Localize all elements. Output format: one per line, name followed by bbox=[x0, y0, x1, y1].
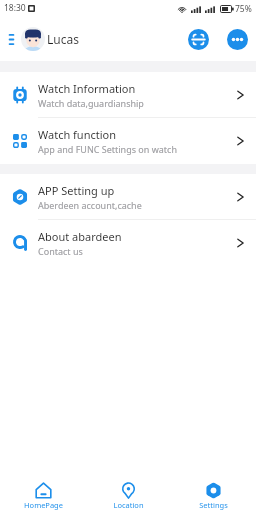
button[interactable]: Scan QR code bbox=[188, 29, 209, 50]
staticText: Aberdeen account,cache bbox=[38, 199, 142, 211]
staticText: About abardeen bbox=[38, 229, 122, 244]
staticText: Watch function bbox=[38, 127, 117, 142]
staticText: App and FUNC Settings on watch bbox=[38, 143, 177, 155]
button[interactable]: Menu bbox=[3, 31, 19, 47]
staticText: 18:30 bbox=[4, 2, 26, 14]
button[interactable]: Watch function bbox=[0, 118, 256, 164]
button[interactable]: More options bbox=[227, 29, 248, 50]
button[interactable]: About abardeen bbox=[0, 220, 256, 266]
staticText: Location bbox=[113, 500, 144, 510]
staticText: Lucas bbox=[47, 31, 79, 47]
button[interactable]: APP Setting up bbox=[0, 174, 256, 220]
staticText: APP Setting up bbox=[38, 183, 115, 198]
staticText: 75% bbox=[235, 3, 252, 15]
staticText: Watch data,guardianship bbox=[38, 97, 144, 109]
staticText: HomePage bbox=[24, 500, 63, 510]
button[interactable]: Watch Information bbox=[0, 72, 256, 118]
button[interactable]: HomePage bbox=[0, 476, 86, 512]
staticText: Settings bbox=[199, 500, 228, 510]
staticText: Contact us bbox=[38, 245, 83, 257]
staticText: Watch Information bbox=[38, 81, 136, 96]
button[interactable]: Location bbox=[86, 476, 171, 512]
button[interactable]: Settings bbox=[171, 476, 256, 512]
